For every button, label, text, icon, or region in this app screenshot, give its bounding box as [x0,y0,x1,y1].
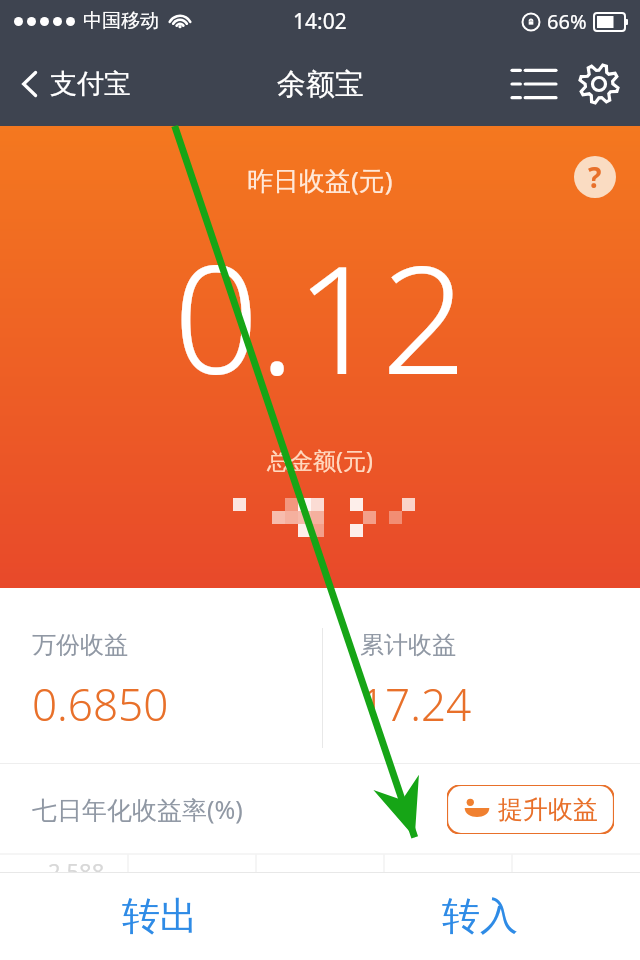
staticText: 余额宝 [277,66,364,103]
staticText: 万份收益 [32,630,128,660]
button[interactable]: 转出 [0,872,320,960]
staticText: 提升收益 [498,794,598,825]
staticText: 昨日收益(元) [247,162,393,198]
staticText: 累计收益 [360,630,456,660]
staticText: 14:02 [293,7,347,36]
staticText: 七日年化收益率(%) [32,792,243,826]
staticText: 支付宝 [50,67,131,101]
staticText: 17.24 [360,674,472,734]
staticText: 转出 [122,892,198,940]
staticText: 中国移动 [83,9,159,33]
staticText: 总金额(元) [267,444,373,475]
button[interactable]: Settings [568,51,640,117]
button[interactable]: Help [574,156,616,198]
staticText: 转入 [442,892,518,940]
staticText: 2.588 [48,856,105,886]
staticText: 0.6850 [32,674,169,734]
button[interactable]: 转入 [320,872,640,960]
staticText: 66% [547,8,587,35]
staticText: ? [588,158,602,196]
button[interactable]: 提升收益 [446,784,615,835]
staticText: 0.12 [173,214,467,418]
button[interactable]: Transaction list [500,53,568,115]
button[interactable]: 支付宝 [0,57,147,111]
